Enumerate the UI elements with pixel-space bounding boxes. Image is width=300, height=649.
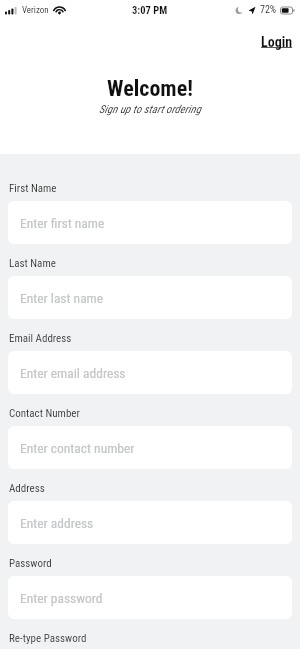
button[interactable]: Enter password bbox=[8, 576, 292, 619]
staticText: Password bbox=[9, 557, 52, 570]
staticText: Enter first name bbox=[20, 215, 105, 231]
button[interactable]: Enter address bbox=[8, 501, 292, 544]
staticText: Contact Number bbox=[9, 407, 80, 420]
staticText: Enter last name bbox=[20, 290, 104, 306]
button[interactable]: Login bbox=[261, 34, 293, 50]
staticText: Sign up to start ordering bbox=[0, 103, 300, 116]
staticText: Enter address bbox=[20, 515, 94, 531]
staticText: Re-type Password bbox=[9, 632, 87, 645]
staticText: Verizon bbox=[22, 5, 49, 16]
button[interactable]: Enter first name bbox=[8, 201, 292, 244]
staticText: Welcome! bbox=[0, 76, 300, 102]
staticText: Enter email address bbox=[20, 365, 126, 381]
staticText: 3:07 PM bbox=[132, 4, 168, 16]
staticText: 72% bbox=[260, 4, 277, 16]
button[interactable]: Enter email address bbox=[8, 351, 292, 394]
staticText: Address bbox=[9, 482, 45, 495]
button[interactable]: Enter contact number bbox=[8, 426, 292, 469]
staticText: Enter password bbox=[20, 590, 103, 606]
staticText: Last Name bbox=[9, 257, 56, 270]
staticText: Email Address bbox=[9, 332, 72, 345]
staticText: First Name bbox=[9, 182, 57, 195]
staticText: Enter contact number bbox=[20, 440, 135, 456]
button[interactable]: Enter last name bbox=[8, 276, 292, 319]
